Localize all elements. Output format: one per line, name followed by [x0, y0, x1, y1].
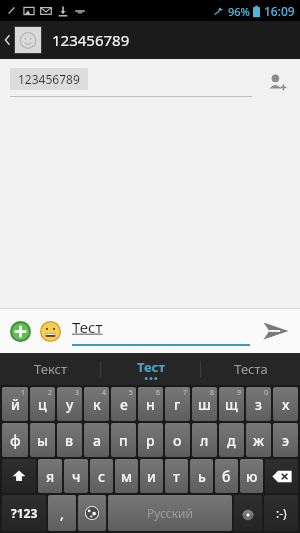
staticText: л [200, 431, 209, 450]
button[interactable]: д [219, 423, 244, 457]
button[interactable]: с [90, 459, 113, 493]
button[interactable]: Attach [6, 317, 34, 345]
button[interactable]: э [273, 423, 298, 457]
staticText: ы [37, 431, 49, 450]
staticText: в [65, 431, 74, 450]
staticText: г [174, 395, 181, 414]
button[interactable]: Shift [2, 459, 36, 493]
staticText: к [93, 395, 101, 414]
staticText: 4 [102, 388, 107, 398]
button[interactable]: Back [0, 21, 14, 59]
button[interactable]: з [246, 387, 271, 421]
button[interactable]: х [273, 387, 298, 421]
button[interactable]: л [192, 423, 217, 457]
button[interactable]: о [165, 423, 190, 457]
staticText: з [255, 395, 262, 414]
staticText: 9 [237, 388, 242, 398]
staticText: м [121, 467, 133, 486]
staticText: й [11, 395, 20, 414]
staticText: н [146, 395, 155, 414]
button[interactable]: ш [192, 387, 217, 421]
staticText: п [119, 431, 128, 450]
staticText: 7 [183, 388, 188, 398]
button[interactable]: Emoticon [264, 495, 298, 531]
staticText: щ [225, 395, 238, 414]
button[interactable]: б [215, 459, 238, 493]
staticText: Тест [72, 317, 103, 337]
button[interactable]: к [84, 387, 109, 421]
button[interactable]: Voice input [234, 495, 262, 531]
staticText: Текст [34, 360, 67, 378]
staticText: ?123 [11, 505, 38, 521]
button[interactable]: и [140, 459, 163, 493]
staticText: Русский [147, 505, 193, 521]
button[interactable]: н [138, 387, 163, 421]
button[interactable]: ц [30, 387, 55, 421]
button[interactable]: Change language [78, 495, 106, 531]
button[interactable]: Send [258, 313, 294, 349]
button[interactable]: ч [64, 459, 88, 493]
staticText: е [120, 395, 128, 414]
button[interactable]: 123456789 [18, 71, 80, 87]
staticText: б [222, 467, 231, 486]
staticText: ч [72, 467, 81, 486]
staticText: 123456789 [18, 71, 80, 87]
button[interactable]: щ [219, 387, 244, 421]
button[interactable]: ю [240, 459, 263, 493]
staticText: я [46, 467, 55, 486]
staticText: 3 [75, 388, 80, 398]
button[interactable]: Текст [0, 353, 100, 385]
button[interactable]: ы [30, 423, 55, 457]
staticText: :-) [276, 505, 287, 521]
button[interactable]: й [2, 387, 28, 421]
button[interactable]: у [57, 387, 82, 421]
button[interactable]: Space [108, 495, 232, 531]
staticText: р [146, 431, 155, 450]
staticText: ц [38, 395, 47, 414]
button[interactable]: Symbols [2, 495, 46, 531]
staticText: у [66, 395, 74, 414]
button[interactable]: р [138, 423, 163, 457]
button[interactable]: Тест [101, 353, 200, 385]
button[interactable]: , [48, 495, 76, 531]
button[interactable]: м [115, 459, 138, 493]
button[interactable]: ь [190, 459, 213, 493]
button[interactable]: Emoji [36, 317, 64, 345]
staticText: д [227, 431, 236, 450]
button[interactable]: г [165, 387, 190, 421]
staticText: э [282, 431, 290, 450]
staticText: 16:09 [264, 3, 295, 19]
staticText: т [173, 467, 180, 486]
staticText: 5 [129, 388, 134, 398]
staticText: 8 [210, 388, 215, 398]
staticText: 6 [156, 388, 161, 398]
button[interactable]: Add contact [262, 68, 292, 98]
staticText: , [60, 504, 64, 523]
button[interactable]: ф [2, 423, 28, 457]
staticText: х [282, 395, 290, 414]
staticText: Теста [234, 360, 268, 378]
staticText: ю [246, 467, 258, 486]
staticText: о [173, 431, 182, 450]
staticText: а [93, 431, 101, 450]
staticText: 2 [48, 388, 53, 398]
staticText: ф [10, 431, 21, 450]
staticText: с [98, 467, 106, 486]
button[interactable]: Backspace [265, 459, 298, 493]
staticText: ь [198, 467, 206, 486]
staticText: 1 [21, 388, 26, 398]
staticText: 0 [264, 388, 269, 398]
button[interactable]: а [84, 423, 109, 457]
staticText: ш [198, 395, 211, 414]
button[interactable]: я [38, 459, 62, 493]
staticText: Тест [137, 358, 165, 376]
staticText: и [147, 467, 156, 486]
button[interactable]: т [165, 459, 188, 493]
staticText: 96% [228, 4, 250, 19]
button[interactable]: е [111, 387, 136, 421]
button[interactable]: Теста [201, 353, 300, 385]
button[interactable]: ж [246, 423, 271, 457]
button[interactable]: в [57, 423, 82, 457]
button[interactable]: п [111, 423, 136, 457]
staticText: 123456789 [52, 30, 130, 50]
